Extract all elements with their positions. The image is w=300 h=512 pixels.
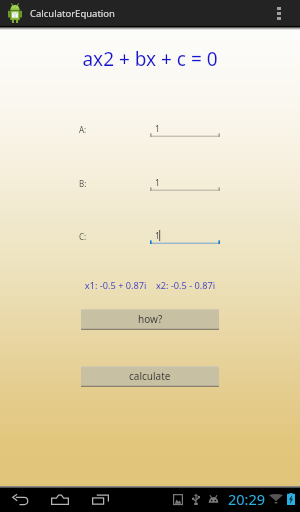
button[interactable]: A: [0,122,300,140]
staticText: 1 [155,123,160,135]
staticText: 20:29 [228,489,266,509]
button[interactable]: More options [266,0,292,26]
staticText: 1 [155,230,160,242]
staticText: C: [79,231,87,242]
button[interactable]: Home [40,486,80,512]
staticText: how? [138,312,163,326]
staticText: B: [79,178,87,189]
staticText: ax2 + bx + c = 0 [0,46,300,72]
button[interactable]: C: [0,229,300,247]
staticText: CalculatorEquation [30,7,115,20]
staticText: A: [79,124,87,135]
button[interactable]: how? [81,309,219,330]
staticText: calculate [129,369,171,383]
staticText: 1 [155,177,160,189]
button[interactable]: B: [0,176,300,194]
button[interactable]: Recent apps [80,486,120,512]
button[interactable]: calculate [81,366,219,387]
button[interactable]: Back [0,486,40,512]
staticText: x1: -0.5 + 0.87i x2: -0.5 - 0.87i [0,279,300,292]
